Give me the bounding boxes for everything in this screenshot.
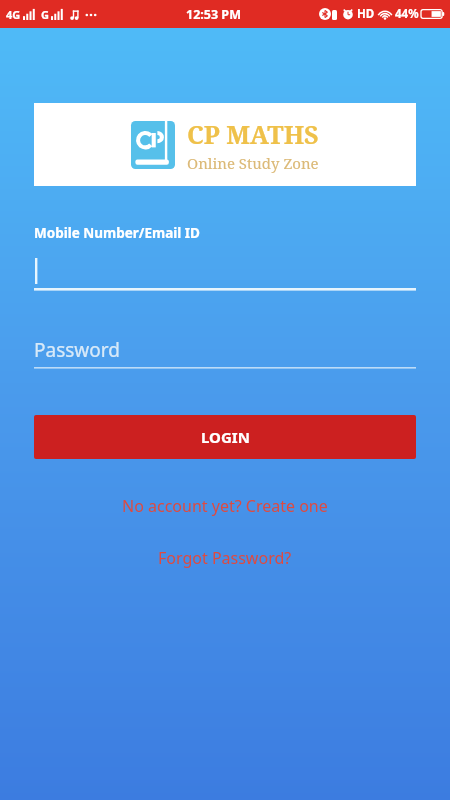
staticText: Password (34, 337, 120, 363)
staticText: LOGIN (201, 427, 250, 447)
staticText: 44% (395, 6, 419, 22)
button[interactable]: No account yet? Create one (34, 489, 416, 523)
staticText: No account yet? Create one (122, 495, 328, 517)
staticText: 12:53 PM (186, 6, 241, 23)
staticText: G (41, 7, 49, 22)
staticText: HD (357, 6, 375, 22)
staticText: Online Study Zone (187, 153, 319, 173)
button[interactable]: Forgot Password? (34, 541, 416, 575)
staticText: Forgot Password? (158, 547, 292, 569)
button[interactable] (34, 256, 416, 288)
button[interactable]: Password (34, 333, 416, 367)
staticText: Mobile Number/Email ID (34, 224, 200, 242)
button[interactable]: LOGIN (34, 415, 416, 459)
staticText: 4G (6, 7, 21, 22)
staticText: CP MATHS (187, 117, 319, 151)
